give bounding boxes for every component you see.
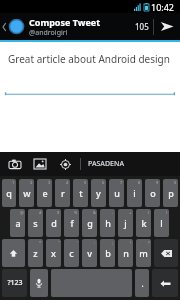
button[interactable]: Add location — [56, 155, 74, 173]
button[interactable]: r — [55, 179, 70, 207]
staticText: b — [105, 247, 111, 259]
staticText: " — [58, 240, 60, 245]
button[interactable]: Backspace — [154, 239, 178, 267]
button[interactable]: w — [19, 179, 34, 207]
staticText: ' — [77, 240, 78, 245]
button[interactable]: t — [73, 179, 88, 207]
staticText: s — [33, 217, 38, 229]
button[interactable]: g — [82, 209, 97, 237]
button[interactable]: e — [37, 179, 52, 207]
staticText: . — [141, 278, 144, 289]
button[interactable]: s — [28, 209, 43, 237]
staticText: e — [42, 187, 48, 199]
button[interactable]: Shift — [2, 239, 25, 267]
button[interactable]: j — [118, 209, 133, 237]
staticText: ?123 — [7, 278, 23, 288]
staticText: ! — [130, 240, 132, 245]
staticText: $ — [57, 210, 60, 215]
staticText: a — [15, 217, 21, 229]
button[interactable]: a — [10, 209, 25, 237]
staticText: u — [114, 187, 120, 199]
staticText: g — [87, 217, 93, 229]
staticText: Compose Tweet — [29, 16, 101, 28]
button[interactable]: Back — [0, 13, 8, 40]
staticText: j — [124, 217, 127, 229]
staticText: d — [51, 217, 57, 229]
staticText: + — [129, 210, 132, 215]
button[interactable]: p — [163, 179, 178, 207]
button[interactable]: q — [2, 179, 16, 207]
button[interactable]: x — [46, 239, 61, 267]
staticText: r — [61, 187, 65, 199]
staticText: i — [133, 187, 136, 199]
staticText: 2 — [30, 180, 33, 185]
staticText: 3 — [48, 180, 51, 185]
button[interactable]: z — [28, 239, 43, 267]
button[interactable]: c — [64, 239, 79, 267]
staticText: 10:42 — [151, 1, 175, 13]
button[interactable]: m — [136, 239, 151, 267]
staticText: PASADENA — [88, 159, 124, 169]
button[interactable]: i — [127, 179, 142, 207]
button[interactable]: Enter — [152, 269, 178, 297]
staticText: v — [87, 247, 92, 259]
staticText: 5 — [84, 180, 87, 185]
staticText: # — [39, 210, 42, 215]
button[interactable]: Voice input — [30, 269, 48, 297]
staticText: 6 — [102, 180, 105, 185]
staticText: p — [168, 187, 174, 199]
staticText: n — [123, 247, 129, 259]
staticText: z — [33, 247, 38, 259]
staticText: & — [93, 210, 96, 215]
staticText: Great article about Android design — [8, 52, 170, 66]
staticText: - — [112, 210, 114, 215]
staticText: * — [39, 240, 42, 245]
staticText: @ — [20, 210, 24, 215]
staticText: l — [160, 217, 163, 229]
staticText: f — [70, 217, 74, 229]
staticText: 9 — [156, 180, 159, 185]
staticText: m — [139, 247, 148, 259]
button[interactable]: b — [100, 239, 115, 267]
staticText: 8 — [138, 180, 141, 185]
button[interactable]: o — [145, 179, 160, 207]
staticText: q — [6, 187, 12, 199]
button[interactable]: Add image — [31, 155, 49, 173]
staticText: ) — [166, 210, 168, 215]
staticText: o — [150, 187, 156, 199]
staticText: c — [69, 247, 74, 259]
button[interactable]: l — [154, 209, 169, 237]
staticText: 4 — [66, 180, 69, 185]
button[interactable]: d — [46, 209, 61, 237]
button[interactable]: u — [109, 179, 124, 207]
staticText: : — [94, 240, 96, 245]
staticText: k — [141, 217, 147, 229]
button[interactable]: v — [82, 239, 97, 267]
button[interactable]: n — [118, 239, 133, 267]
staticText: y — [96, 187, 101, 199]
staticText: ( — [148, 210, 150, 215]
button[interactable]: k — [136, 209, 151, 237]
staticText: 105 — [135, 21, 149, 32]
staticText: 7 — [120, 180, 123, 185]
button[interactable]: y — [91, 179, 106, 207]
staticText: ; — [112, 240, 114, 245]
button[interactable]: . — [135, 269, 149, 297]
staticText: t — [79, 187, 83, 199]
button[interactable]: f — [64, 209, 79, 237]
button[interactable]: ?123 — [2, 269, 27, 297]
staticText: x — [51, 247, 56, 259]
staticText: ? — [148, 240, 150, 245]
staticText: h — [105, 217, 111, 229]
staticText: w — [23, 187, 31, 199]
staticText: 0 — [174, 180, 177, 185]
button[interactable]: h — [100, 209, 115, 237]
staticText: 1 — [12, 180, 15, 185]
staticText: % — [74, 210, 78, 215]
staticText: @androigirl — [29, 28, 68, 38]
button[interactable]: Send tweet — [154, 13, 180, 40]
button[interactable]: Take photo — [6, 155, 24, 173]
button[interactable]: Great article about Android design — [8, 52, 172, 66]
